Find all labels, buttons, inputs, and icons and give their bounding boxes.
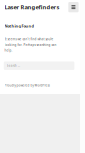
staticText: Nothing Found [5, 23, 34, 29]
staticText: looking for. Perhaps searching can [5, 43, 57, 47]
button[interactable]: Menu [68, 2, 79, 12]
staticText: Proudly powered by WordPress [5, 83, 50, 87]
staticText: It seems we can’t find what you’re [5, 37, 54, 41]
button[interactable]: Search … [4, 61, 74, 70]
staticText: Search … [7, 64, 20, 68]
button[interactable]: Laser Rangefinders [5, 3, 60, 11]
staticText: help. [5, 48, 13, 52]
button[interactable]: Proudly powered by WordPress [5, 83, 50, 87]
staticText: Laser Rangefinders [5, 3, 60, 11]
